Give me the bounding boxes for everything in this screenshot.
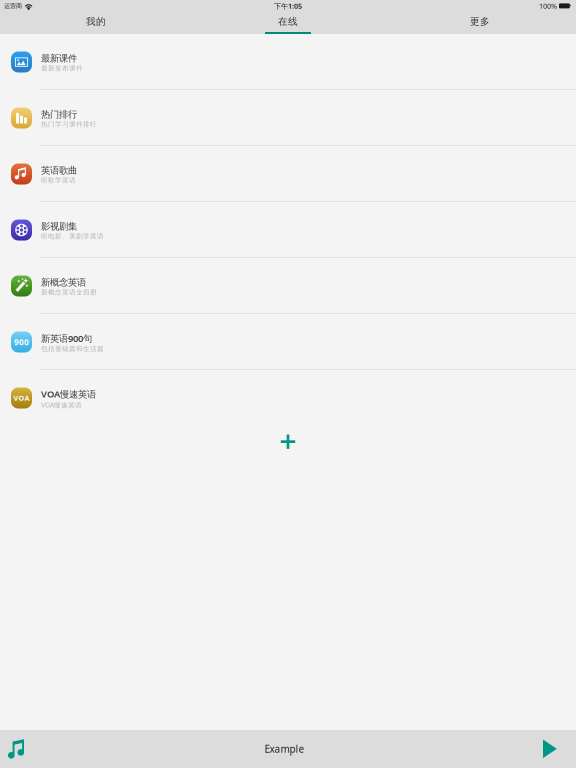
staticText: 在线: [278, 15, 298, 28]
button[interactable]: 更多: [384, 12, 576, 34]
button[interactable]: 我的: [0, 12, 192, 34]
button[interactable]: Add: [275, 426, 301, 456]
button[interactable]: 热门排行: [0, 90, 576, 146]
staticText: 900: [14, 336, 29, 348]
staticText: 热门学习课件排行: [41, 120, 97, 129]
button[interactable]: 在线: [192, 12, 384, 34]
button[interactable]: 新概念英语: [0, 258, 576, 314]
staticText: 包括基础篇和生活篇: [41, 345, 104, 353]
staticText: 100%: [539, 1, 557, 11]
staticText: 听电影、美剧学英语: [41, 232, 104, 241]
staticText: Example: [264, 742, 304, 756]
staticText: 英语歌曲: [41, 164, 77, 176]
staticText: VOA: [13, 393, 29, 403]
button[interactable]: VOA: [0, 370, 576, 426]
staticText: 新概念英语: [41, 276, 86, 288]
button[interactable]: Play: [531, 730, 576, 768]
button[interactable]: 最新课件: [0, 34, 576, 90]
staticText: 运营商: [4, 2, 22, 10]
staticText: VOA慢速英语: [41, 388, 96, 400]
staticText: 最新发布课件: [41, 64, 83, 73]
staticText: 我的: [86, 15, 106, 28]
staticText: 影视剧集: [41, 220, 77, 232]
staticText: 新英语900句: [41, 332, 92, 345]
staticText: 下午1:05: [274, 1, 302, 11]
button[interactable]: 英语歌曲: [0, 146, 576, 202]
staticText: 最新课件: [41, 52, 77, 64]
button[interactable]: Music: [0, 730, 38, 768]
staticText: 听歌学英语: [41, 176, 76, 185]
staticText: 热门排行: [41, 108, 77, 120]
staticText: 新概念英语全四册: [41, 288, 97, 297]
button[interactable]: 影视剧集: [0, 202, 576, 258]
staticText: VOA慢速英语: [41, 400, 82, 409]
staticText: 更多: [470, 15, 490, 28]
button[interactable]: 900: [0, 314, 576, 370]
